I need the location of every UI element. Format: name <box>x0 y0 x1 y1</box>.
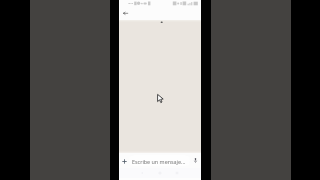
button[interactable]: Back <box>120 8 130 18</box>
button[interactable]: Attach <box>119 156 129 166</box>
button[interactable]: Record voice message <box>190 155 201 166</box>
button[interactable]: Escribe un mensaje... <box>129 155 190 166</box>
staticText: Escribe un mensaje... <box>132 158 186 165</box>
